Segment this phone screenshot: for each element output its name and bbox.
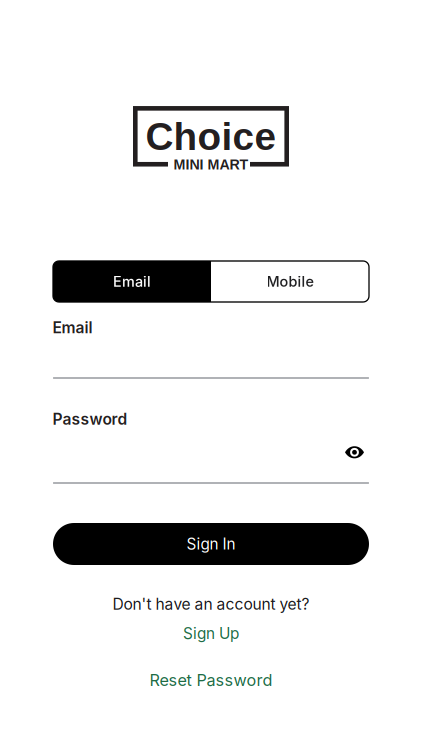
button[interactable]: Reset Password — [131, 663, 291, 697]
staticText: Mobile — [266, 273, 313, 290]
button[interactable]: Email — [53, 261, 211, 302]
button[interactable]: Sign In — [53, 523, 369, 565]
button[interactable]: Mobile — [211, 261, 369, 302]
staticText: MINI MART — [173, 157, 248, 172]
staticText: Choice — [145, 115, 276, 158]
button[interactable]: Show password — [332, 432, 376, 472]
staticText: Password — [52, 410, 127, 428]
staticText: Don't have an account yet? — [112, 595, 309, 613]
staticText: Email — [52, 318, 92, 337]
staticText: Reset Password — [149, 670, 272, 690]
staticText: Sign In — [186, 535, 235, 553]
staticText: Sign Up — [183, 624, 239, 643]
staticText: Email — [113, 273, 151, 290]
button[interactable]: Sign Up — [151, 616, 271, 650]
